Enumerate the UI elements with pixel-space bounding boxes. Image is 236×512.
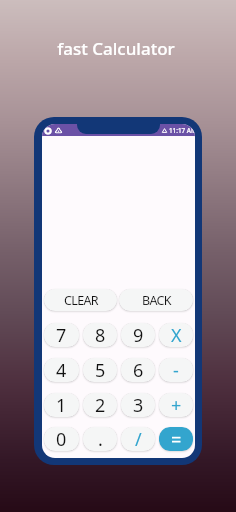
button[interactable]: BACK bbox=[119, 289, 193, 311]
button[interactable]: 9 bbox=[121, 323, 155, 347]
button[interactable]: 1 bbox=[44, 393, 79, 417]
button[interactable]: / bbox=[121, 427, 155, 451]
staticText: 5 bbox=[95, 358, 106, 382]
staticText: 1 bbox=[56, 393, 67, 417]
button[interactable]: . bbox=[83, 427, 117, 451]
staticText: 6 bbox=[133, 358, 144, 382]
staticText: 11:17 AM bbox=[169, 126, 195, 135]
button[interactable]: 4 bbox=[44, 358, 79, 382]
staticText: 4 bbox=[56, 358, 67, 382]
staticText: = bbox=[171, 427, 182, 451]
button[interactable]: X bbox=[159, 323, 193, 347]
button[interactable]: 3 bbox=[121, 393, 155, 417]
staticText: BACK bbox=[142, 292, 171, 309]
button[interactable]: = bbox=[159, 427, 193, 451]
staticText: + bbox=[171, 393, 182, 417]
button[interactable]: 8 bbox=[83, 323, 117, 347]
staticText: X bbox=[171, 323, 182, 347]
staticText: 2 bbox=[95, 393, 106, 417]
button[interactable]: CLEAR bbox=[44, 289, 117, 311]
staticText: 7 bbox=[56, 323, 67, 347]
button[interactable]: - bbox=[159, 358, 193, 382]
staticText: 3 bbox=[133, 393, 144, 417]
button[interactable]: 5 bbox=[83, 358, 117, 382]
button[interactable]: 7 bbox=[44, 323, 79, 347]
staticText: - bbox=[173, 358, 179, 382]
staticText: 9 bbox=[133, 323, 144, 347]
staticText: 0 bbox=[56, 427, 67, 451]
other: Cloud upload bbox=[55, 127, 62, 134]
staticText: / bbox=[135, 427, 142, 451]
button[interactable]: 6 bbox=[121, 358, 155, 382]
button[interactable]: 0 bbox=[44, 427, 79, 451]
other: Status icon bbox=[45, 128, 51, 134]
staticText: 8 bbox=[95, 323, 106, 347]
button[interactable]: 2 bbox=[83, 393, 117, 417]
staticText: . bbox=[98, 427, 103, 451]
staticText: fast Calculator bbox=[0, 37, 234, 60]
button[interactable]: + bbox=[159, 393, 193, 417]
staticText: CLEAR bbox=[64, 292, 98, 309]
